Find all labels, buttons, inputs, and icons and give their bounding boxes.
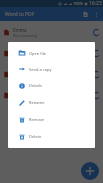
button[interactable]: Delete: [8, 128, 95, 145]
button[interactable]: Open file: [8, 45, 95, 61]
button[interactable]: More options: [91, 9, 101, 19]
button[interactable]: Notes: [0, 85, 103, 106]
staticText: Rename: [29, 100, 45, 105]
staticText: Details: [29, 83, 42, 88]
staticText: Send a copy: [29, 67, 52, 72]
button[interactable]: Rename: [8, 94, 95, 111]
staticText: Letter: [13, 69, 26, 75]
staticText: Remove: [29, 117, 45, 122]
button[interactable]: Send a copy: [8, 61, 95, 77]
staticText: Emma: [13, 27, 27, 33]
staticText: File is converting: [13, 55, 37, 59]
staticText: Delete: [29, 134, 42, 139]
button[interactable]: Details: [8, 77, 95, 94]
button[interactable]: Letter: [0, 64, 103, 85]
staticText: File is converting: [13, 34, 37, 38]
staticText: Word to PDF: [5, 11, 35, 18]
staticText: File is converting: [13, 97, 37, 101]
button[interactable]: Emma: [0, 21, 103, 43]
staticText: 100%: [73, 1, 84, 6]
button[interactable]: Remove: [8, 111, 95, 128]
button[interactable]: Report: [0, 43, 103, 64]
staticText: Report: [13, 48, 28, 54]
staticText: 16:23: [89, 0, 102, 7]
button[interactable]: Add: [81, 162, 99, 180]
staticText: Open file: [29, 51, 47, 56]
button[interactable]: Save: [79, 8, 91, 20]
